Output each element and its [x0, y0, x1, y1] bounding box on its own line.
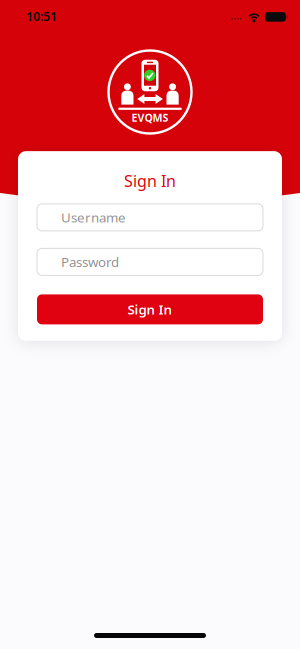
staticText: Username	[61, 208, 126, 226]
staticText: 10:51	[26, 8, 57, 24]
button[interactable]: Username	[37, 204, 263, 231]
staticText: EVQMS	[131, 110, 168, 125]
staticText: Sign In	[124, 170, 176, 191]
staticText: Sign In	[127, 300, 172, 318]
button[interactable]: Sign In	[37, 294, 263, 324]
button[interactable]: Password	[37, 248, 263, 275]
staticText: Password	[61, 253, 119, 271]
